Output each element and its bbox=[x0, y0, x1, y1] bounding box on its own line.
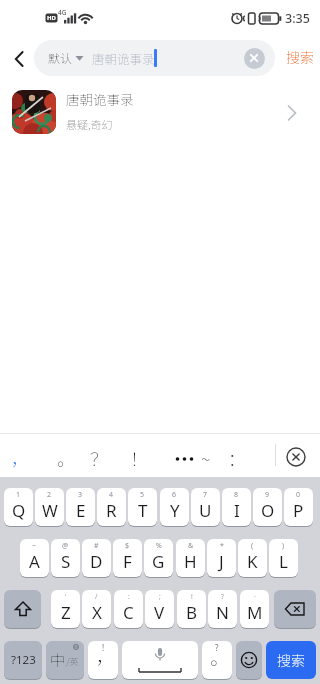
button[interactable] bbox=[122, 641, 198, 679]
staticText: 8 bbox=[234, 490, 239, 500]
button[interactable]: ' bbox=[51, 590, 80, 628]
staticText: · bbox=[254, 592, 256, 601]
staticText: HD bbox=[47, 14, 56, 22]
button[interactable] bbox=[6, 46, 32, 72]
button[interactable] bbox=[236, 641, 262, 679]
button[interactable]: * bbox=[207, 539, 236, 577]
button[interactable]: 2 bbox=[35, 488, 64, 526]
staticText: ' bbox=[65, 592, 67, 601]
button[interactable] bbox=[274, 590, 316, 628]
button[interactable]: 默认 bbox=[34, 40, 275, 76]
staticText: 。 bbox=[57, 445, 75, 471]
staticText: I bbox=[234, 499, 240, 522]
staticText: ! bbox=[102, 642, 105, 653]
staticText: Q bbox=[12, 499, 26, 522]
button[interactable] bbox=[171, 439, 201, 473]
button[interactable] bbox=[244, 48, 265, 69]
staticText: 3 bbox=[78, 490, 83, 500]
staticText: ? bbox=[215, 642, 219, 653]
button[interactable]: % bbox=[144, 539, 173, 577]
button[interactable]: : bbox=[114, 590, 143, 628]
staticText: ： bbox=[228, 445, 246, 471]
staticText: /英 bbox=[66, 655, 79, 668]
button[interactable]: ~ bbox=[20, 539, 49, 577]
button[interactable]: ) bbox=[269, 539, 298, 577]
button[interactable]: 4 bbox=[97, 488, 126, 526]
button[interactable]: 8 bbox=[222, 488, 251, 526]
staticText: : bbox=[128, 592, 130, 601]
staticText: B bbox=[186, 601, 198, 624]
staticText: G bbox=[152, 550, 165, 573]
button[interactable]: $ bbox=[113, 539, 142, 577]
staticText: ！ bbox=[130, 445, 148, 471]
staticText: @ bbox=[62, 541, 69, 551]
staticText: 2 bbox=[47, 490, 52, 500]
staticText: 4G bbox=[58, 8, 67, 17]
button[interactable]: ~ bbox=[201, 439, 231, 473]
staticText: T bbox=[138, 499, 148, 522]
button[interactable]: ！ bbox=[130, 439, 160, 473]
staticText: 1 bbox=[16, 490, 21, 500]
staticText: E bbox=[76, 499, 86, 522]
staticText: U bbox=[199, 499, 212, 522]
button[interactable]: ? bbox=[208, 590, 237, 628]
staticText: Z bbox=[61, 601, 71, 624]
staticText: ~ bbox=[201, 445, 211, 471]
button[interactable]: ( bbox=[238, 539, 267, 577]
button[interactable]: ?123 bbox=[4, 641, 42, 679]
staticText: S bbox=[61, 550, 71, 573]
button[interactable]: ; bbox=[145, 590, 174, 628]
button[interactable]: # bbox=[82, 539, 111, 577]
staticText: * bbox=[220, 541, 224, 551]
staticText: H bbox=[184, 550, 197, 573]
button[interactable]: ? bbox=[202, 641, 232, 679]
staticText: W bbox=[42, 499, 58, 522]
button[interactable] bbox=[4, 590, 41, 628]
button[interactable]: 9 bbox=[253, 488, 282, 526]
button[interactable]: · bbox=[240, 590, 269, 628]
button[interactable]: 唐朝诡事录 bbox=[0, 84, 320, 140]
staticText: # bbox=[94, 541, 99, 551]
staticText: ， bbox=[96, 642, 116, 670]
staticText: ， bbox=[11, 445, 29, 471]
staticText: N bbox=[216, 601, 229, 624]
staticText: 唐朝诡事录 bbox=[66, 89, 134, 109]
staticText: 3:35 bbox=[285, 10, 310, 27]
staticText: 9 bbox=[265, 490, 270, 500]
staticText: 中 bbox=[50, 649, 66, 671]
staticText: $ bbox=[125, 541, 130, 551]
staticText: ? bbox=[221, 592, 224, 601]
button[interactable] bbox=[285, 446, 307, 468]
button[interactable]: / bbox=[82, 590, 111, 628]
button[interactable]: ， bbox=[11, 439, 41, 473]
staticText: 。 bbox=[210, 643, 230, 671]
staticText: ( bbox=[251, 541, 254, 551]
button[interactable]: ! bbox=[88, 641, 118, 679]
staticText: 7 bbox=[203, 490, 208, 500]
staticText: O bbox=[261, 499, 275, 522]
button[interactable]: 0 bbox=[284, 488, 313, 526]
staticText: C bbox=[123, 601, 134, 624]
staticText: L bbox=[279, 550, 288, 573]
staticText: 唐朝诡事录 bbox=[92, 49, 155, 67]
button[interactable]: 1 bbox=[4, 488, 33, 526]
staticText: X bbox=[92, 601, 102, 624]
button[interactable]: ： bbox=[228, 439, 258, 473]
button[interactable]: 7 bbox=[191, 488, 220, 526]
staticText: P bbox=[293, 499, 304, 522]
staticText: ! bbox=[191, 592, 193, 601]
button[interactable]: 搜索 bbox=[286, 47, 314, 67]
staticText: 0 bbox=[296, 490, 301, 500]
button[interactable]: 。 bbox=[57, 439, 87, 473]
button[interactable]: @ bbox=[51, 539, 80, 577]
button[interactable]: ？ bbox=[90, 439, 120, 473]
button[interactable]: 搜索 bbox=[266, 641, 316, 679]
button[interactable]: 中 bbox=[46, 641, 84, 679]
button[interactable]: 5 bbox=[128, 488, 157, 526]
button[interactable]: 3 bbox=[66, 488, 95, 526]
staticText: D bbox=[90, 550, 103, 573]
button[interactable]: & bbox=[176, 539, 205, 577]
button[interactable]: ! bbox=[177, 590, 206, 628]
staticText: 4 bbox=[109, 490, 114, 500]
button[interactable]: 6 bbox=[160, 488, 189, 526]
